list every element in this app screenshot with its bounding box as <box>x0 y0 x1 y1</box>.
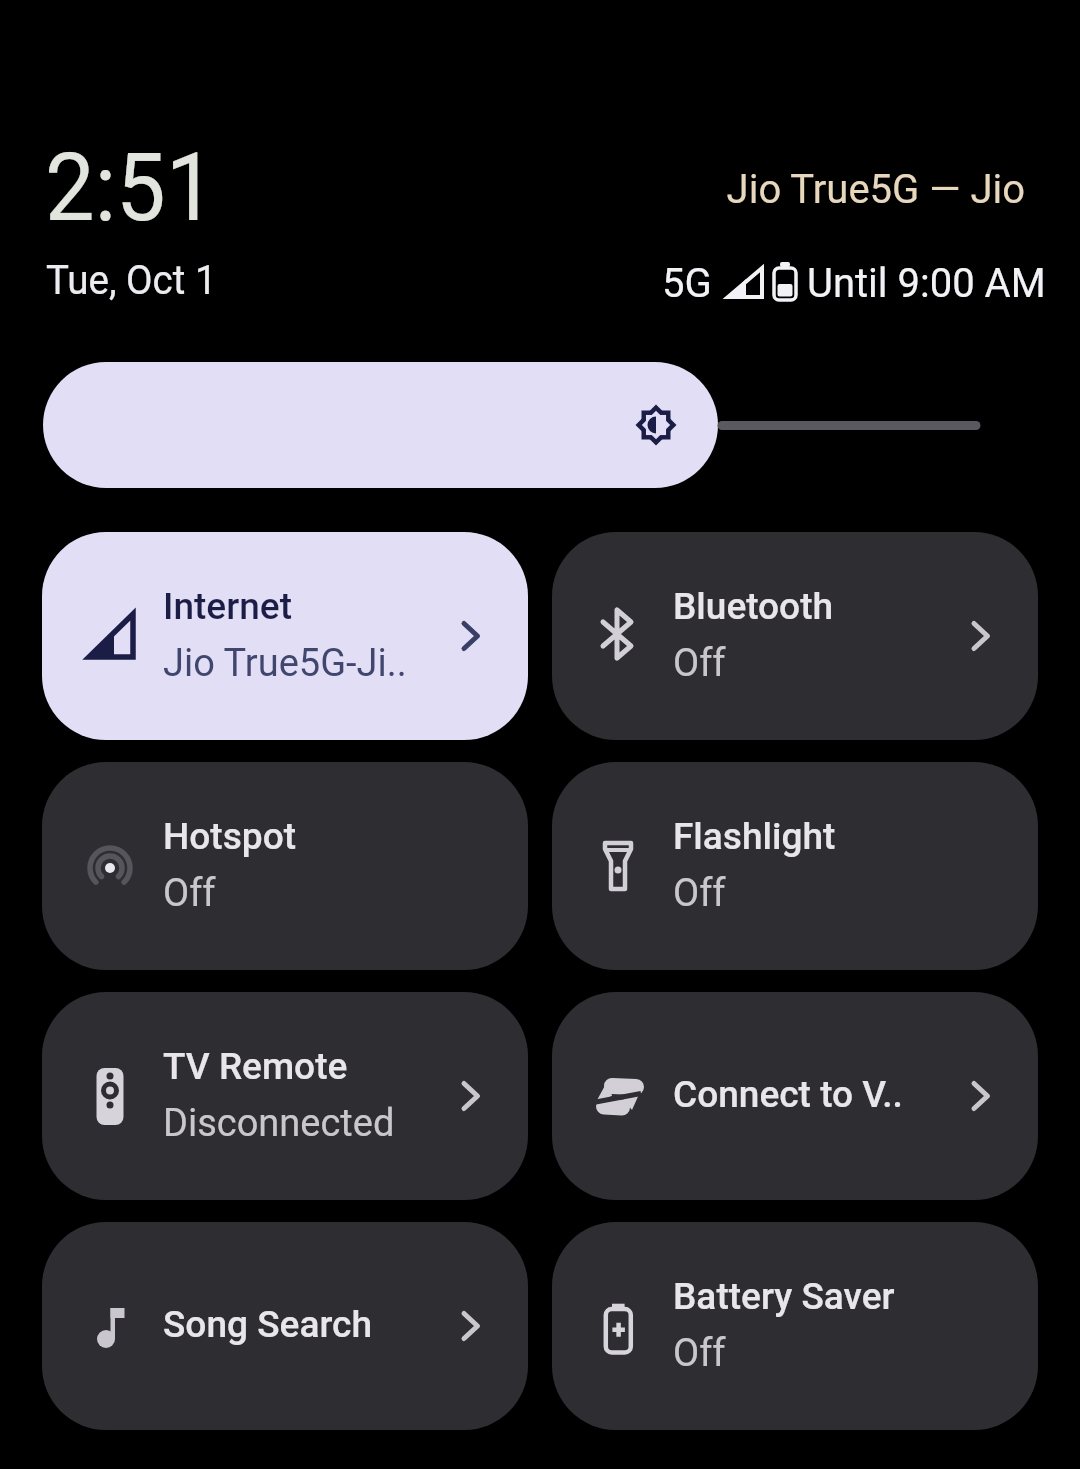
staticText: Tue, Oct 1 <box>46 256 217 304</box>
button[interactable]: Bluetooth <box>552 532 1038 740</box>
staticText: Song Search <box>163 1303 373 1346</box>
staticText: Until 9:00 AM <box>807 260 1046 307</box>
staticText: Jio True5G — Jio <box>425 166 1025 1469</box>
button[interactable]: Song Search <box>42 1222 528 1430</box>
staticText: Flashlight <box>673 815 836 858</box>
staticText: 2:51 <box>45 132 216 243</box>
button[interactable]: Connect to V.. <box>552 992 1038 1200</box>
staticText: Disconnected <box>163 1101 395 1146</box>
button[interactable]: Flashlight <box>552 762 1038 970</box>
staticText: 5G <box>662 260 712 307</box>
staticText: TV Remote <box>163 1045 348 1088</box>
staticText: Bluetooth <box>673 585 834 628</box>
staticText: Connect to V.. <box>673 1073 903 1116</box>
staticText: Hotspot <box>163 815 297 858</box>
staticText: Off <box>673 1331 726 1376</box>
staticText: Off <box>673 641 726 686</box>
staticText: Jio True5G-Ji.. <box>163 641 407 686</box>
button[interactable] <box>43 362 718 488</box>
button[interactable]: Battery Saver <box>552 1222 1038 1430</box>
staticText: Battery Saver <box>673 1275 895 1318</box>
button[interactable]: TV Remote <box>42 992 528 1200</box>
staticText: Off <box>673 871 726 916</box>
staticText: Off <box>163 871 216 916</box>
button[interactable]: Internet <box>42 532 528 740</box>
button[interactable]: Hotspot <box>42 762 528 970</box>
staticText: Internet <box>163 585 292 628</box>
